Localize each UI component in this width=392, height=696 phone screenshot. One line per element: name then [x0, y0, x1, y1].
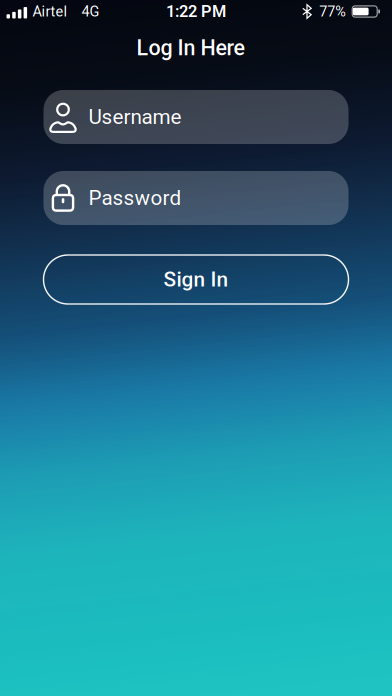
- button[interactable]: Username: [43, 90, 348, 144]
- staticText: 1:22 PM: [166, 2, 226, 21]
- staticText: Sign In: [163, 267, 228, 292]
- staticText: Airtel: [33, 3, 68, 20]
- staticText: 77%: [319, 3, 346, 20]
- staticText: Username: [88, 105, 181, 129]
- staticText: Password: [88, 186, 181, 210]
- staticText: 4G: [82, 3, 100, 20]
- staticText: Log In Here: [136, 35, 244, 61]
- button[interactable]: Password: [43, 171, 348, 225]
- button[interactable]: Sign In: [43, 255, 348, 304]
